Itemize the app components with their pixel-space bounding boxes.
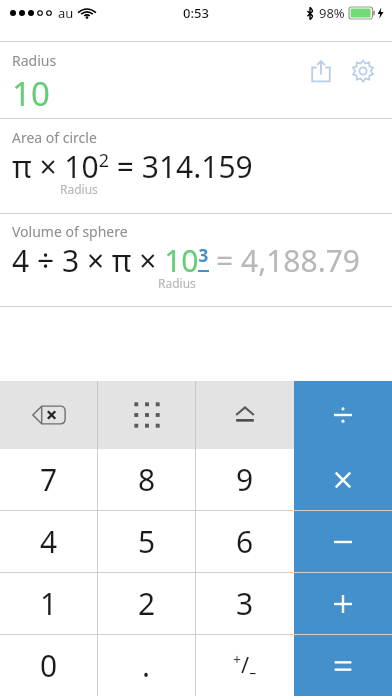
staticText: Radius xyxy=(60,181,98,197)
staticText: 1 xyxy=(40,583,58,624)
staticText: 4 ÷ 3 × π × 103 = 4,188.79 xyxy=(12,240,361,281)
staticText: Radius xyxy=(12,51,57,70)
staticText: 10 xyxy=(12,71,50,116)
staticText: Volume of sphere xyxy=(12,222,128,241)
button[interactable]: Settings xyxy=(348,56,378,86)
button[interactable]: Plus minus xyxy=(196,635,294,696)
button[interactable]: Area of circle xyxy=(0,119,392,213)
staticText: . xyxy=(142,645,151,686)
button[interactable]: 6 xyxy=(196,511,294,572)
staticText: 98% xyxy=(319,4,345,22)
button[interactable]: 3 xyxy=(196,573,294,634)
button[interactable]: Share xyxy=(306,56,336,86)
staticText: 9 xyxy=(236,459,254,500)
staticText: 5 xyxy=(138,521,156,562)
staticText: 3 xyxy=(236,583,254,624)
button[interactable]: Exponent xyxy=(196,381,294,449)
staticText: 0:53 xyxy=(183,4,209,22)
button[interactable]: Keypad xyxy=(98,381,195,449)
button[interactable]: 8 xyxy=(98,449,195,510)
staticText: 2 xyxy=(138,583,156,624)
button[interactable]: 9 xyxy=(196,449,294,510)
staticText: π × 102 = 314.159 xyxy=(12,146,253,187)
button[interactable]: Radius xyxy=(0,42,392,118)
staticText: 0 xyxy=(40,645,58,686)
button[interactable]: 1 xyxy=(0,573,97,634)
button[interactable]: Volume of sphere xyxy=(0,214,392,306)
button[interactable]: Operator xyxy=(294,635,392,696)
button[interactable]: . xyxy=(98,635,195,696)
button[interactable]: 5 xyxy=(98,511,195,572)
staticText: Area of circle xyxy=(12,128,97,147)
button[interactable]: Operator xyxy=(294,449,392,510)
staticText: Radius xyxy=(158,275,196,291)
button[interactable]: Operator xyxy=(294,381,392,449)
staticText: 7 xyxy=(40,459,58,500)
staticText: 6 xyxy=(236,521,254,562)
button[interactable]: Operator xyxy=(294,511,392,572)
staticText: au xyxy=(58,4,74,22)
button[interactable]: 0 xyxy=(0,635,97,696)
button[interactable]: 2 xyxy=(98,573,195,634)
staticText: 8 xyxy=(138,459,156,500)
button[interactable]: Operator xyxy=(294,573,392,634)
staticText: 4 xyxy=(40,521,58,562)
button[interactable]: 4 xyxy=(0,511,97,572)
button[interactable]: Backspace xyxy=(0,381,97,449)
staticText: +/– xyxy=(233,649,257,682)
button[interactable]: 7 xyxy=(0,449,97,510)
